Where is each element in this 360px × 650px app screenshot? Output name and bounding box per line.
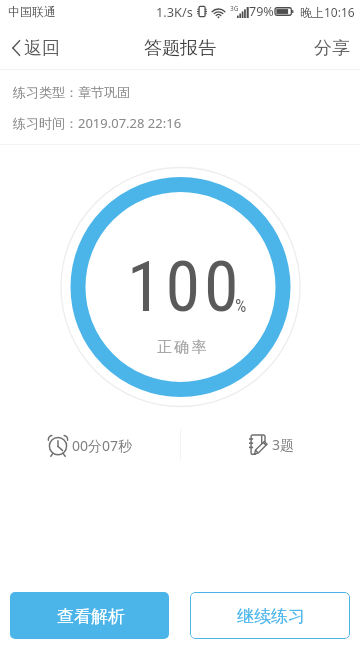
staticText: % (235, 295, 247, 316)
staticText: 1.3K/s (156, 3, 193, 20)
staticText: 晚上10:16 (300, 4, 355, 20)
staticText: 继续练习 (237, 606, 305, 627)
button[interactable]: 分享 (302, 27, 360, 66)
staticText: 00分07秒 (72, 436, 133, 455)
staticText: 3G (230, 4, 239, 13)
button[interactable]: 继续练习 (190, 592, 350, 639)
staticText: 100 (127, 246, 243, 328)
button[interactable]: 返回 (0, 27, 70, 66)
staticText: 正确率 (157, 338, 209, 357)
staticText: 分享 (314, 37, 350, 60)
button[interactable]: 00分07秒 (44, 432, 137, 458)
button[interactable]: 3题 (244, 432, 299, 457)
staticText: 返回 (24, 37, 60, 60)
staticText: 3题 (272, 435, 295, 454)
staticText: 79% (249, 3, 274, 20)
staticText: 练习类型：章节巩固 (13, 84, 130, 100)
button[interactable]: 查看解析 (10, 592, 169, 639)
staticText: 答题报告 (144, 37, 216, 60)
staticText: 练习时间：2019.07.28 22:16 (13, 114, 182, 132)
staticText: 中国联通 (8, 4, 56, 19)
staticText: 查看解析 (57, 606, 125, 627)
